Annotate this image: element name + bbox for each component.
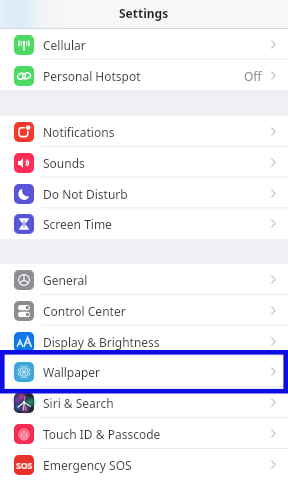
button[interactable]: Notifications (0, 116, 288, 147)
staticText: SOS (16, 459, 33, 471)
button[interactable]: Sounds (0, 147, 288, 178)
staticText: General (43, 272, 88, 288)
button[interactable]: Cellular (0, 29, 288, 60)
staticText: Display & Brightness (43, 334, 160, 350)
button[interactable]: Personal Hotspot (0, 60, 288, 91)
staticText: Off (244, 68, 262, 84)
button[interactable]: Siri & Search (0, 387, 288, 418)
staticText: Control Center (43, 303, 126, 319)
button[interactable]: SOS (0, 449, 288, 480)
button[interactable]: Wallpaper (0, 356, 288, 387)
staticText: Touch ID & Passcode (43, 426, 161, 442)
staticText: Screen Time (43, 216, 112, 232)
staticText: Do Not Disturb (43, 186, 128, 202)
button[interactable]: Control Center (0, 295, 288, 326)
staticText: Settings (119, 5, 169, 21)
button[interactable]: Touch ID & Passcode (0, 418, 288, 449)
button[interactable]: Screen Time (0, 208, 288, 239)
staticText: Siri & Search (43, 395, 114, 411)
staticText: Emergency SOS (43, 457, 132, 473)
button[interactable]: Do Not Disturb (0, 178, 288, 209)
staticText: Notifications (43, 124, 115, 140)
staticText: Personal Hotspot (43, 68, 141, 84)
staticText: Cellular (43, 37, 86, 53)
button[interactable]: General (0, 264, 288, 295)
staticText: Wallpaper (43, 364, 101, 380)
staticText: Sounds (43, 155, 85, 171)
button[interactable]: Display & Brightness (0, 326, 288, 357)
